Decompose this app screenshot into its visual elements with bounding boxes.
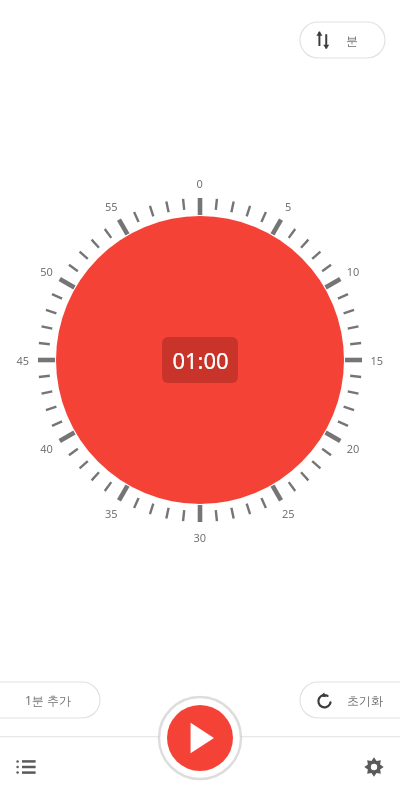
button[interactable]: Settings [352, 745, 396, 789]
staticText: 초기화 [347, 693, 383, 708]
button[interactable]: Timer list [4, 745, 48, 789]
button[interactable]: 01:00 [162, 337, 238, 383]
staticText: 분 [346, 33, 358, 48]
button[interactable]: Start timer [167, 705, 233, 771]
button[interactable]: 분 [300, 22, 385, 58]
button[interactable]: 초기화 [300, 682, 400, 718]
staticText: 01:00 [172, 345, 229, 375]
button[interactable]: 1분 추가 [0, 682, 100, 718]
staticText: 1분 추가 [25, 692, 71, 708]
